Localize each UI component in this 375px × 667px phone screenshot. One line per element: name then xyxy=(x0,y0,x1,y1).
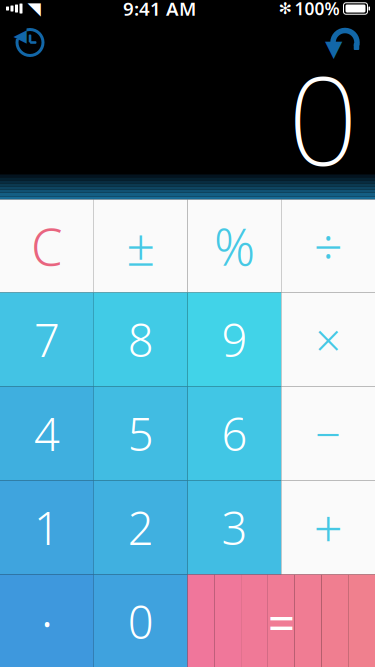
staticText: 5 xyxy=(128,403,154,464)
staticText: × xyxy=(315,309,341,370)
staticText: = xyxy=(268,590,295,653)
staticText: 7 xyxy=(34,309,60,370)
button[interactable]: 8 xyxy=(94,292,188,386)
button[interactable]: ± xyxy=(94,199,188,292)
button[interactable]: % xyxy=(187,199,281,292)
staticText: ▼ xyxy=(325,36,342,61)
button[interactable]: = xyxy=(187,574,375,667)
staticText: C xyxy=(31,212,63,280)
staticText: 6 xyxy=(221,403,247,464)
button[interactable]: + xyxy=(281,480,375,574)
button[interactable]: ÷ xyxy=(281,199,375,292)
staticText: 9:41 AM xyxy=(123,0,196,21)
staticText: ◀ xyxy=(13,26,26,45)
button[interactable]: 7 xyxy=(0,292,94,386)
staticText: 0 xyxy=(288,37,358,199)
button[interactable]: − xyxy=(281,386,375,480)
button[interactable]: 6 xyxy=(187,386,281,480)
staticText: ± xyxy=(126,212,155,280)
button[interactable]: History xyxy=(8,20,52,64)
staticText: 3 xyxy=(221,497,247,558)
staticText: 1 xyxy=(34,497,60,558)
staticText: 0 xyxy=(128,591,154,652)
button[interactable]: 0 xyxy=(94,574,188,667)
staticText: ◥ xyxy=(27,0,40,18)
staticText: % xyxy=(214,212,255,280)
button[interactable]: C xyxy=(0,199,94,292)
staticText: 100% xyxy=(294,0,339,20)
staticText: 4 xyxy=(34,403,60,464)
button[interactable]: 4 xyxy=(0,386,94,480)
button[interactable]: 5 xyxy=(94,386,188,480)
button[interactable]: · xyxy=(0,574,94,667)
staticText: 9 xyxy=(221,309,247,370)
button[interactable]: × xyxy=(281,292,375,386)
button[interactable]: 1 xyxy=(0,480,94,574)
staticText: ÷ xyxy=(314,212,343,280)
button[interactable]: 9 xyxy=(187,292,281,386)
staticText: 2 xyxy=(128,497,154,558)
staticText: · xyxy=(40,586,53,657)
button[interactable]: Undo xyxy=(323,20,367,64)
staticText: 8 xyxy=(128,309,154,370)
button[interactable]: 2 xyxy=(94,480,188,574)
button[interactable]: 3 xyxy=(187,480,281,574)
staticText: + xyxy=(314,494,343,561)
staticText: − xyxy=(315,403,341,464)
staticText: ✻ xyxy=(278,0,291,18)
